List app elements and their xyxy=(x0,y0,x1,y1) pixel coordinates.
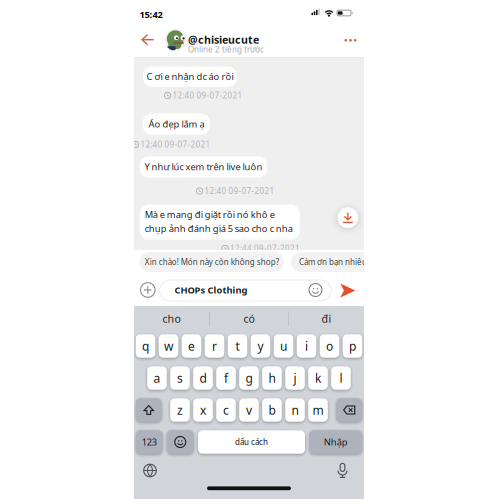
button[interactable]: e xyxy=(182,334,201,358)
button[interactable]: m xyxy=(308,398,328,422)
button[interactable]: p xyxy=(343,334,362,358)
button[interactable]: Delete xyxy=(336,398,362,422)
button[interactable]: More xyxy=(341,35,359,45)
button[interactable]: a xyxy=(147,366,167,390)
staticText: m xyxy=(312,402,323,418)
staticText: y xyxy=(257,338,263,354)
staticText: 15:42 xyxy=(139,8,162,21)
staticText: v xyxy=(246,402,252,418)
staticText: h xyxy=(268,370,275,386)
staticText: n xyxy=(291,402,298,418)
button[interactable]: Dictate xyxy=(337,463,348,478)
button[interactable]: w xyxy=(159,334,178,358)
staticText: có xyxy=(243,312,254,326)
button[interactable]: 123 xyxy=(136,430,162,454)
staticText: i xyxy=(305,338,308,354)
button[interactable]: d xyxy=(193,366,213,390)
staticText: 12:44 09-07-2021 xyxy=(230,243,300,254)
button[interactable]: z xyxy=(170,398,190,422)
button[interactable]: View profile xyxy=(165,29,187,51)
button[interactable]: t xyxy=(228,334,247,358)
button[interactable]: có xyxy=(214,307,284,331)
staticText: e xyxy=(188,338,195,354)
button[interactable]: đi xyxy=(291,307,361,331)
staticText: l xyxy=(339,370,342,386)
button[interactable]: j xyxy=(285,366,305,390)
staticText: Áo đẹp lắm ạ xyxy=(148,118,204,130)
button[interactable]: Emoji xyxy=(167,430,193,454)
staticText: g xyxy=(245,370,252,386)
button[interactable]: k xyxy=(308,366,328,390)
staticText: q xyxy=(142,338,149,354)
button[interactable]: b xyxy=(262,398,282,422)
button[interactable]: Nhập xyxy=(309,430,362,454)
button[interactable]: Switch keyboard xyxy=(143,464,157,477)
staticText: z xyxy=(177,402,183,418)
staticText: s xyxy=(177,370,183,386)
staticText: 123 xyxy=(142,436,157,448)
staticText: C ơi e nhận dc áo rồi xyxy=(146,70,233,83)
button[interactable]: g xyxy=(239,366,259,390)
button[interactable]: h xyxy=(262,366,282,390)
button[interactable]: y xyxy=(251,334,270,358)
staticText: 12:40 09-07-2021 xyxy=(140,139,210,150)
button[interactable]: Shift xyxy=(136,398,161,422)
button[interactable]: o xyxy=(320,334,339,358)
button[interactable]: Download xyxy=(337,207,359,229)
staticText: Xin chào! Món này còn không shop? xyxy=(145,257,279,267)
staticText: 12:40 09-07-2021 xyxy=(172,90,242,101)
button[interactable]: cho xyxy=(136,307,206,331)
button[interactable]: c xyxy=(216,398,236,422)
staticText: CHOPs Clothing xyxy=(174,284,247,296)
staticText: 12:40 09-07-2021 xyxy=(204,186,274,196)
staticText: x xyxy=(200,402,206,418)
staticText: d xyxy=(199,370,206,386)
button[interactable]: u xyxy=(274,334,293,358)
staticText: w xyxy=(164,338,173,354)
button[interactable]: Back xyxy=(141,34,155,46)
button[interactable]: q xyxy=(136,334,155,358)
staticText: Online 2 tiếng trước xyxy=(188,44,264,55)
button[interactable]: i xyxy=(297,334,316,358)
button[interactable]: Cảm ơn bạn nhiều nha! xyxy=(291,252,386,272)
button[interactable]: Emoji xyxy=(309,283,322,296)
staticText: đi xyxy=(321,312,331,326)
staticText: Nhập xyxy=(324,436,348,448)
button[interactable]: s xyxy=(170,366,190,390)
staticText: f xyxy=(224,370,228,386)
button[interactable]: Send xyxy=(340,283,355,297)
staticText: u xyxy=(280,338,287,354)
staticText: o xyxy=(326,338,333,354)
button[interactable]: f xyxy=(216,366,236,390)
button[interactable]: l xyxy=(331,366,351,390)
staticText: j xyxy=(293,370,296,386)
staticText: p xyxy=(349,338,356,354)
staticText: dấu cách xyxy=(235,437,268,447)
staticText: cho xyxy=(162,312,180,326)
staticText: chụp ảnh đánh giá 5 sao cho c nha xyxy=(145,222,293,235)
button[interactable]: n xyxy=(285,398,305,422)
button[interactable]: v xyxy=(239,398,259,422)
button[interactable]: Xin chào! Món này còn không shop? xyxy=(140,252,284,272)
button[interactable]: Add attachment xyxy=(140,282,155,297)
staticText: a xyxy=(153,370,160,386)
button[interactable]: dấu cách xyxy=(198,430,305,454)
staticText: b xyxy=(268,402,275,418)
staticText: t xyxy=(235,338,239,354)
staticText: Cảm ơn bạn nhiều nha! xyxy=(299,257,385,267)
staticText: @chisieucute xyxy=(188,32,259,47)
staticText: c xyxy=(223,402,229,418)
button[interactable]: x xyxy=(193,398,213,422)
button[interactable]: r xyxy=(205,334,224,358)
staticText: Y như lúc xem trên live luôn xyxy=(145,160,263,173)
staticText: r xyxy=(212,338,217,354)
staticText: k xyxy=(315,370,321,386)
staticText: Mà e mang đi giặt rồi nó khô e xyxy=(145,208,275,221)
